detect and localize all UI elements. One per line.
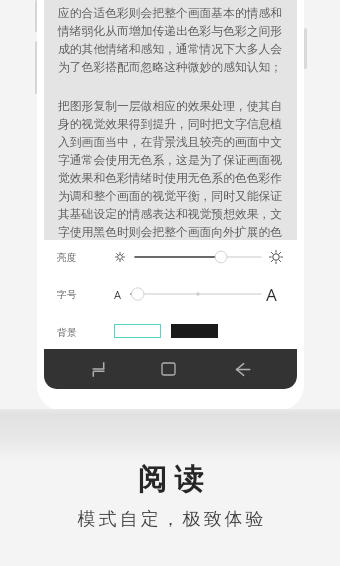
staticText: 情绪弱化从而增加传递出色彩与色彩之间形 xyxy=(58,24,283,39)
staticText: 入到画面当中，在背景浅且较亮的画面中文 xyxy=(58,135,283,150)
staticText: A xyxy=(266,283,277,306)
staticText: 亮度 xyxy=(57,252,77,264)
button[interactable]: Back xyxy=(225,353,261,385)
staticText: 身的视觉效果得到提升，同时把文字信息植 xyxy=(58,117,283,132)
button[interactable]: Light background xyxy=(114,324,161,338)
button[interactable]: 亮度 xyxy=(44,240,297,276)
staticText: 为调和整个画面的视觉平衡，同时又能保证 xyxy=(58,189,283,204)
staticText: 其基础设定的情感表达和视觉预想效果，文 xyxy=(58,207,283,222)
staticText: 应的合适色彩则会把整个画面基本的情感和 xyxy=(58,6,283,21)
staticText: 为了色彩搭配而忽略这种微妙的感知认知； xyxy=(58,60,283,75)
staticText: 字通常会使用无色系，这是为了保证画面视 xyxy=(58,153,283,168)
staticText: 字使用黑色时则会把整个画面向外扩展的色 xyxy=(58,225,283,240)
staticText: 背景 xyxy=(57,327,77,339)
staticText: 觉效果和色彩情绪时使用无色系的色色彩作 xyxy=(58,171,283,186)
staticText: 模式自定，极致体验 xyxy=(76,508,265,531)
staticText: 把图形复制一层做相应的效果处理，使其自 xyxy=(58,99,283,114)
button[interactable]: Recent apps xyxy=(80,353,116,385)
staticText: A xyxy=(114,287,122,302)
button[interactable]: Home xyxy=(150,353,186,385)
button[interactable]: 字号 xyxy=(44,276,297,313)
staticText: 成的其他情绪和感知，通常情况下大多人会 xyxy=(58,42,283,57)
staticText: 阅读 xyxy=(134,461,207,498)
staticText: 字号 xyxy=(57,289,77,301)
